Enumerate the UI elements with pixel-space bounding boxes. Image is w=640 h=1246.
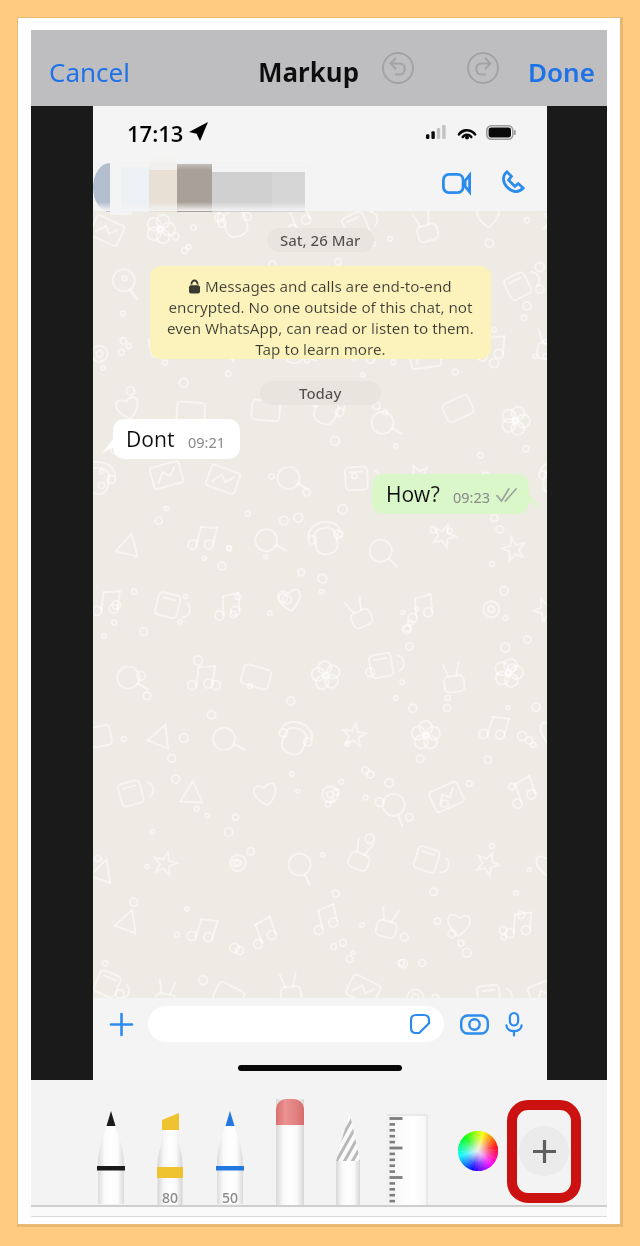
- button[interactable]: Undo: [374, 44, 422, 92]
- button[interactable]: Cancel: [39, 41, 140, 96]
- staticText: Done: [528, 54, 595, 89]
- button[interactable]: Camera: [457, 1007, 491, 1041]
- staticText: 80: [162, 1188, 179, 1207]
- button[interactable]: Messages and calls are end-to-end: [150, 266, 491, 359]
- button[interactable]: Color picker: [455, 1128, 501, 1174]
- staticText: Sat, 26 Mar: [280, 230, 361, 250]
- staticText: Markup: [258, 54, 360, 89]
- staticText: Cancel: [49, 54, 130, 89]
- staticText: Today: [299, 383, 342, 403]
- staticText: How?: [386, 480, 440, 509]
- button[interactable]: Attach: [106, 1009, 136, 1039]
- button[interactable]: Voice message: [497, 1007, 531, 1041]
- staticText: Messages and calls are end-to-end: [205, 276, 452, 297]
- staticText: 50: [222, 1188, 239, 1207]
- button[interactable]: Pen: [84, 1080, 138, 1205]
- button[interactable]: Redo: [459, 44, 507, 92]
- button[interactable]: Voice call: [490, 161, 534, 205]
- button[interactable]: [148, 1006, 444, 1042]
- staticText: Dont: [126, 425, 175, 454]
- button[interactable]: Add: [519, 1126, 569, 1176]
- button[interactable]: Ruler: [380, 1080, 434, 1205]
- button[interactable]: Highlighter: [143, 1080, 197, 1205]
- staticText: 17:13: [127, 118, 184, 148]
- staticText: encrypted. No one outside of this chat, …: [167, 297, 474, 359]
- button[interactable]: Pencil: [321, 1080, 375, 1205]
- button[interactable]: Eraser: [263, 1080, 317, 1205]
- button[interactable]: Done: [518, 41, 605, 96]
- staticText: 09:21: [188, 432, 226, 452]
- button[interactable]: Video call: [434, 161, 478, 205]
- staticText: 09:23: [453, 487, 491, 507]
- button[interactable]: Pen: [203, 1080, 257, 1205]
